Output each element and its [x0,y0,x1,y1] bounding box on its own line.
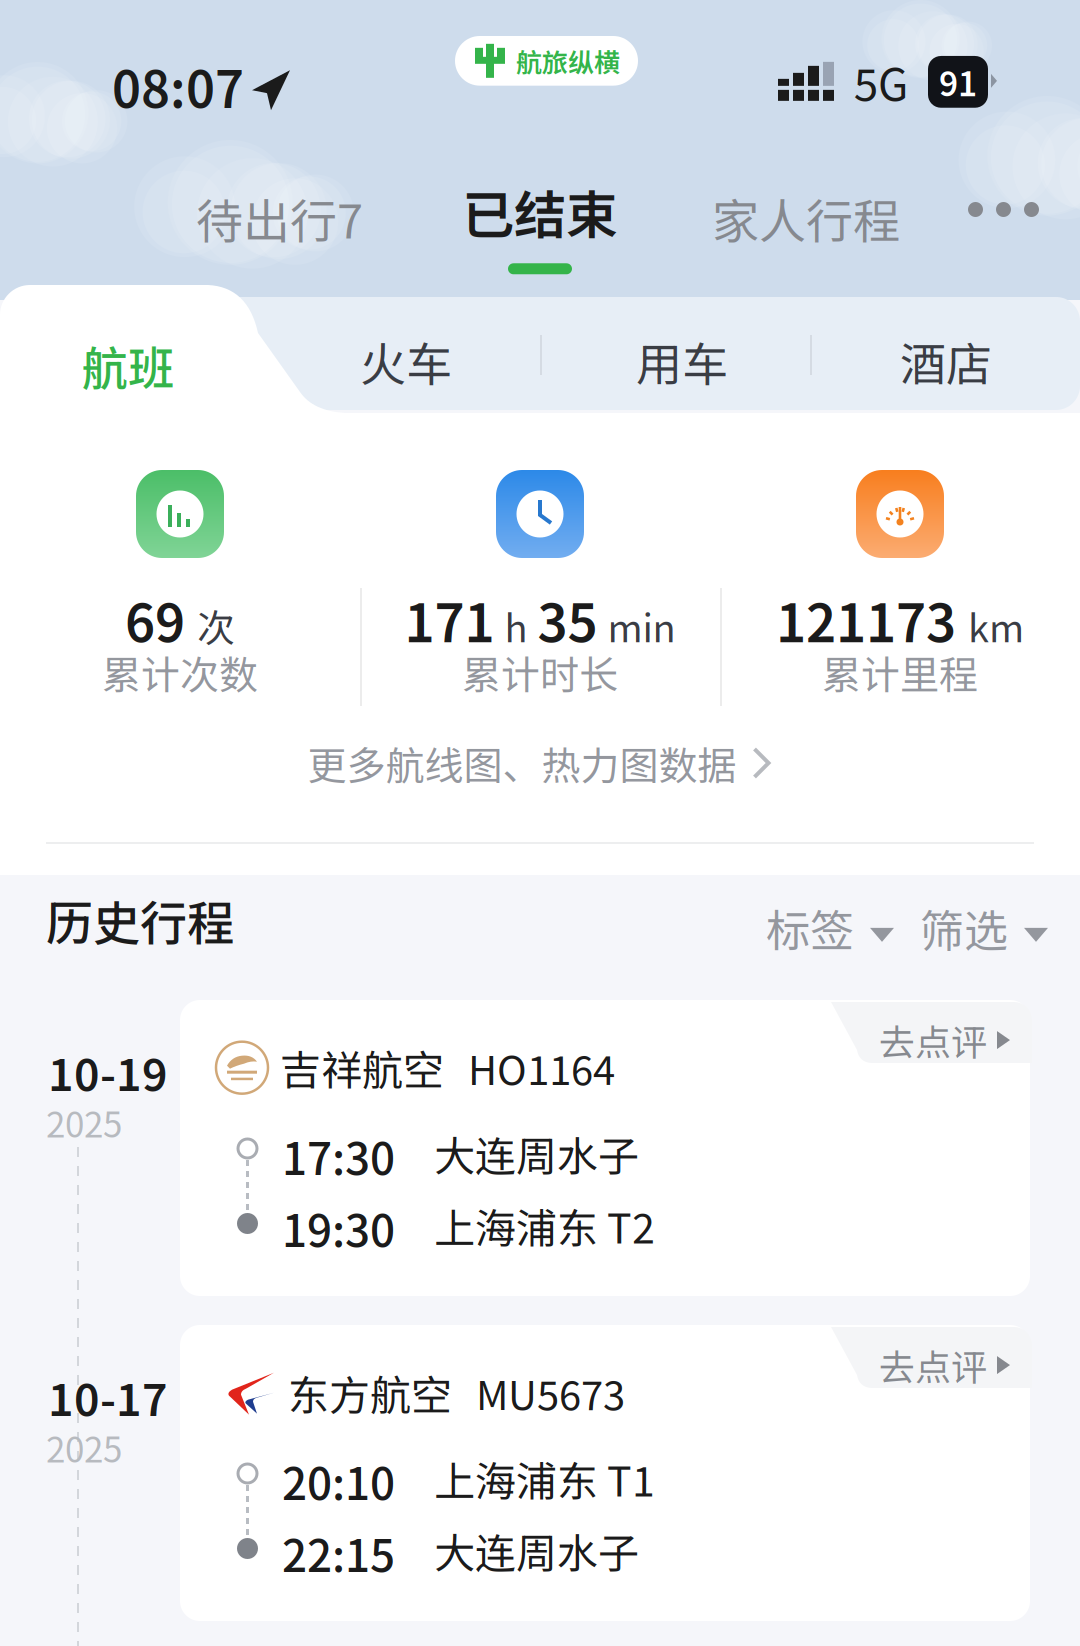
staticText: km [968,598,1024,653]
staticText: 大连周水子 [434,1521,639,1580]
staticText: 家人行程 [712,184,900,252]
staticText: 吉祥航空 [280,1038,444,1097]
staticText: 标签 [766,896,854,960]
staticText: 2025 [46,1422,122,1473]
staticText: 22:15 [282,1521,395,1585]
button[interactable]: 更多航线图、热力图数据 [0,723,1080,803]
staticText: HO1164 [468,1039,615,1097]
staticText: min [607,598,675,653]
staticText: 17:30 [282,1124,395,1188]
staticText: 航班 [82,332,174,399]
button[interactable]: 去点评 [180,1000,1030,1296]
staticText: MU5673 [476,1364,625,1422]
staticText: 2025 [46,1097,122,1148]
staticText: 累计时长 [462,644,618,700]
staticText: 上海浦东 T2 [434,1196,655,1255]
staticText: 10-19 [48,1040,168,1104]
staticText: 航旅纵横 [516,42,620,80]
staticText: 待出行7 [196,184,363,252]
staticText: 171 [404,582,494,657]
staticText: 筛选 [920,896,1008,960]
staticText: 91 [939,58,977,106]
staticText: 20:10 [282,1449,395,1513]
staticText: 酒店 [900,328,992,395]
button[interactable]: 标签 [766,896,894,960]
staticText: 去点评 [879,1014,987,1066]
staticText: 69 [125,582,185,657]
staticText: 次 [197,598,235,653]
staticText: 累计里程 [822,644,978,700]
button[interactable]: 筛选 [920,896,1048,960]
staticText: h [504,598,527,653]
staticText: 08:07 [112,50,244,122]
staticText: 大连周水子 [434,1124,639,1183]
staticText: 19:30 [282,1196,395,1260]
staticText: 已结束 [462,174,618,249]
staticText: 5G [854,50,908,114]
button[interactable]: 去点评 [180,1325,1030,1621]
staticText: 上海浦东 T1 [434,1449,655,1508]
staticText: 累计次数 [102,644,258,700]
staticText: 10-17 [48,1365,168,1429]
staticText: 35 [537,582,597,657]
staticText: 更多航线图、热力图数据 [307,735,736,791]
staticText: 用车 [636,328,728,395]
staticText: 历史行程 [46,886,234,954]
staticText: 121173 [776,582,956,657]
staticText: 东方航空 [288,1363,452,1422]
staticText: 火车 [360,328,452,395]
staticText: 去点评 [879,1339,987,1391]
